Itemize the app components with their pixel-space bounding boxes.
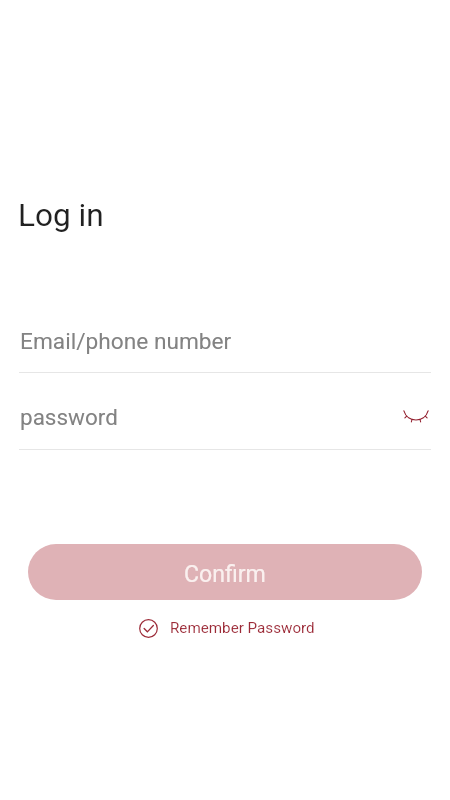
staticText: Confirm — [184, 561, 266, 588]
staticText: Email/phone number — [20, 328, 232, 355]
button[interactable]: Email/phone number — [0, 325, 450, 357]
button[interactable]: Confirm — [28, 544, 422, 600]
staticText: Remember Password — [170, 619, 315, 637]
button[interactable]: Show password — [399, 399, 433, 431]
button[interactable]: Remember Password — [139, 613, 315, 643]
staticText: Log in — [18, 197, 104, 233]
staticText: password — [20, 404, 118, 430]
button[interactable]: password — [20, 401, 397, 433]
